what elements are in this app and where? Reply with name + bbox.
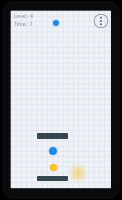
button[interactable]: Paddle [37, 176, 68, 181]
staticText: Time : 7 [14, 21, 33, 28]
button[interactable]: More options [93, 13, 109, 29]
staticText: Level : 4 [14, 13, 33, 20]
button[interactable]: Paddle [37, 133, 68, 139]
